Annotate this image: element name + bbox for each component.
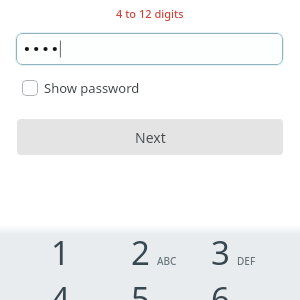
staticText: 4: [51, 276, 70, 300]
button[interactable]: 1: [20, 238, 100, 284]
staticText: ABC: [157, 254, 177, 268]
button[interactable]: 4 GHI: [20, 284, 100, 300]
button[interactable]: PIN entry field: [16, 33, 283, 65]
staticText: Next: [135, 128, 166, 147]
staticText: 1: [51, 230, 70, 275]
button[interactable]: 5 JKL: [100, 284, 180, 300]
staticText: 4 to 12 digits: [116, 6, 184, 21]
staticText: 3: [211, 230, 230, 275]
button[interactable]: Next: [17, 119, 283, 155]
staticText: 5: [131, 276, 150, 300]
button[interactable]: 6 MNO: [180, 284, 260, 300]
staticText: Show password: [44, 79, 140, 97]
button[interactable]: Show password: [16, 77, 140, 99]
button[interactable]: 2 ABC: [100, 238, 180, 284]
staticText: DEF: [237, 254, 256, 268]
staticText: 6: [211, 276, 230, 300]
button[interactable]: 3 DEF: [180, 238, 260, 284]
staticText: 2: [131, 230, 150, 275]
